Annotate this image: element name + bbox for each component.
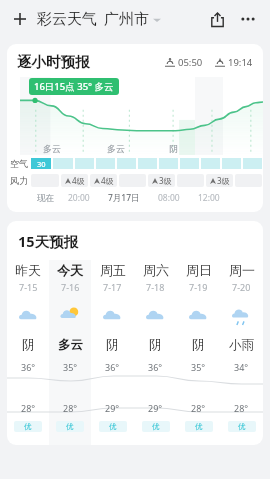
staticText: 优 — [195, 422, 203, 431]
staticText: 28° — [21, 402, 36, 414]
button[interactable]: 周六 — [134, 260, 177, 445]
staticText: 28° — [234, 402, 249, 414]
button[interactable]: Share — [204, 6, 230, 32]
staticText: 昨天 — [15, 262, 41, 278]
button[interactable]: 周五 — [91, 260, 134, 445]
staticText: 29° — [105, 402, 120, 414]
staticText: 7-16 — [61, 281, 80, 293]
staticText: 阴 — [149, 337, 162, 353]
staticText: 30 — [37, 159, 46, 169]
staticText: 3级 — [217, 175, 230, 186]
button[interactable]: 昨天 — [7, 260, 49, 445]
staticText: 7月17日 — [108, 192, 140, 204]
staticText: 多云 — [107, 143, 125, 154]
staticText: 05:50 — [178, 56, 203, 69]
staticText: 4级 — [101, 175, 114, 186]
staticText: 小雨 — [229, 337, 254, 353]
staticText: 7-19 — [189, 281, 208, 293]
staticText: 7-20 — [232, 281, 251, 293]
staticText: 15天预报 — [18, 231, 79, 251]
staticText: 28° — [63, 402, 78, 414]
staticText: 7-15 — [19, 281, 38, 293]
staticText: 35° — [63, 361, 78, 373]
staticText: 4级 — [72, 175, 85, 186]
staticText: 优 — [66, 422, 74, 431]
staticText: 7-18 — [146, 281, 165, 293]
staticText: 空气 — [10, 158, 28, 169]
staticText: 3级 — [159, 175, 172, 186]
staticText: 现在 — [37, 193, 54, 204]
staticText: 优 — [24, 422, 32, 431]
staticText: 36° — [21, 361, 36, 373]
staticText: 彩云天气 — [37, 10, 97, 29]
staticText: 广州市 — [104, 10, 149, 29]
staticText: 36° — [105, 361, 120, 373]
button[interactable]: More options — [235, 6, 261, 32]
staticText: 周五 — [100, 262, 126, 278]
staticText: 28° — [191, 402, 206, 414]
staticText: 优 — [152, 422, 160, 431]
staticText: 逐小时预报 — [17, 53, 90, 71]
staticText: 7-17 — [103, 281, 122, 293]
staticText: 优 — [109, 422, 117, 431]
staticText: 阴 — [22, 337, 35, 353]
staticText: 36° — [148, 361, 163, 373]
staticText: 19:14 — [228, 56, 253, 69]
staticText: 16日15点 35° 多云 — [34, 80, 114, 93]
staticText: 多云 — [58, 337, 83, 353]
staticText: 阴 — [192, 337, 205, 353]
staticText: 阴 — [169, 143, 178, 154]
button[interactable]: 今天 — [49, 260, 91, 445]
staticText: 今天 — [57, 262, 83, 278]
button[interactable]: 周一 — [220, 260, 263, 445]
button[interactable]: 周日 — [177, 260, 220, 445]
staticText: 优 — [238, 422, 246, 431]
staticText: 多云 — [43, 143, 61, 154]
button[interactable]: 彩云天气 — [37, 10, 161, 29]
staticText: 20:00 — [68, 192, 90, 204]
staticText: 12:00 — [198, 192, 220, 204]
staticText: 周一 — [229, 262, 255, 278]
button[interactable]: Add city — [9, 8, 31, 30]
staticText: 08:00 — [158, 192, 180, 204]
staticText: 阴 — [106, 337, 119, 353]
staticText: 周日 — [186, 262, 212, 278]
staticText: 29° — [148, 402, 163, 414]
staticText: 35° — [191, 361, 206, 373]
staticText: 周六 — [143, 262, 169, 278]
staticText: 风力 — [10, 175, 28, 186]
staticText: 34° — [234, 361, 249, 373]
